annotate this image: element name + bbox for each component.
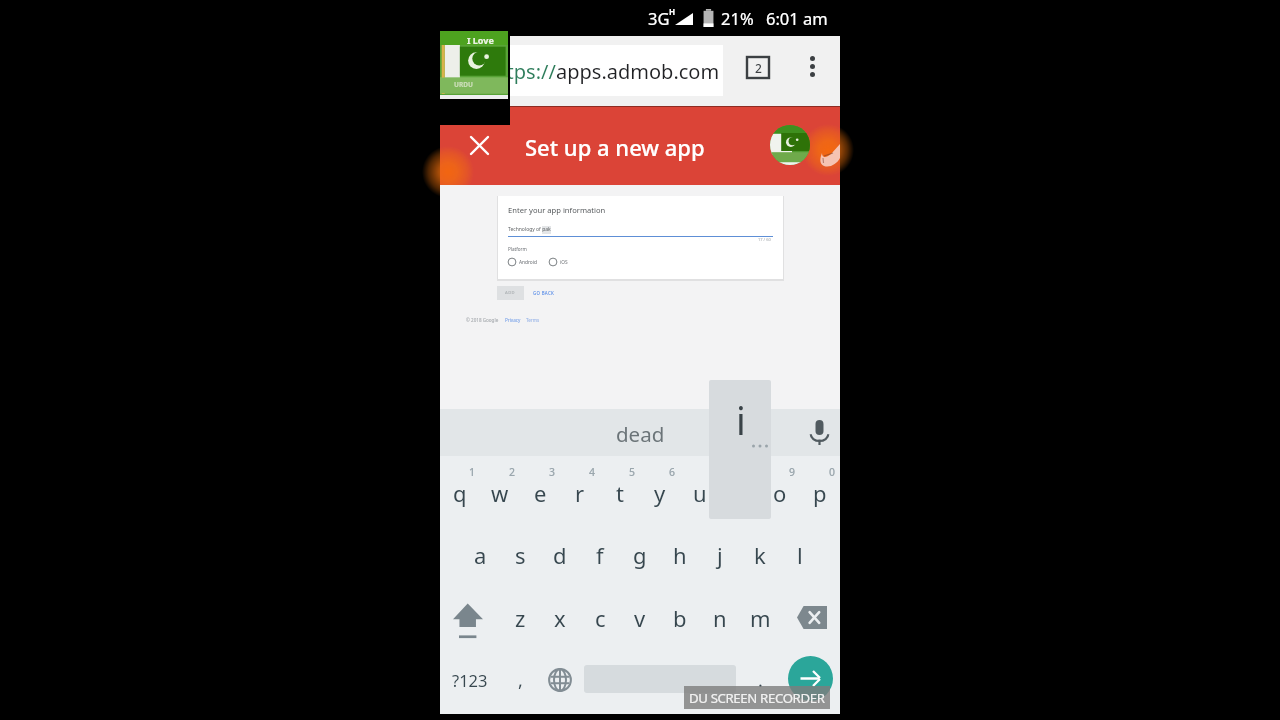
staticText: URDU: [454, 80, 473, 89]
button[interactable]: w: [480, 465, 520, 521]
button[interactable]: Enter: [788, 656, 833, 701]
button[interactable]: Period: [742, 652, 778, 708]
button[interactable]: Change language: [540, 652, 580, 708]
staticText: n: [713, 603, 727, 633]
button[interactable]: Backspace: [789, 589, 835, 645]
button[interactable]: ?123: [442, 652, 498, 708]
button[interactable]: Privacy: [505, 317, 521, 323]
staticText: 3: [549, 465, 589, 479]
staticText: ?123: [452, 669, 488, 691]
button[interactable]: Android: [508, 258, 537, 266]
button[interactable]: j: [700, 527, 740, 583]
button[interactable]: Shift: [441, 593, 494, 649]
button[interactable]: Comma: [502, 652, 538, 708]
button[interactable]: k: [740, 527, 780, 583]
staticText: p: [813, 478, 827, 508]
staticText: v: [634, 603, 646, 633]
staticText: 17 / 60: [758, 237, 771, 242]
button[interactable]: z: [500, 590, 540, 646]
button[interactable]: More options: [798, 52, 826, 80]
staticText: b: [673, 603, 687, 633]
staticText: w: [491, 478, 509, 508]
staticText: u: [693, 478, 707, 508]
staticText: 4: [589, 465, 629, 479]
staticText: f: [596, 540, 604, 570]
staticText: Technology of pak: [508, 226, 551, 233]
button[interactable]: Space: [584, 665, 736, 693]
button[interactable]: q: [440, 465, 480, 521]
button[interactable]: o: [760, 465, 800, 521]
button[interactable]: y: [640, 465, 680, 521]
staticText: s: [515, 540, 526, 570]
staticText: i: [736, 394, 746, 446]
staticText: ,: [518, 668, 523, 693]
button[interactable]: r: [560, 465, 600, 521]
staticText: 21%: [721, 7, 754, 29]
button[interactable]: s: [500, 527, 540, 583]
button[interactable]: x: [540, 590, 580, 646]
button[interactable]: l: [780, 527, 820, 583]
staticText: .: [758, 668, 763, 693]
button[interactable]: Terms: [526, 317, 540, 323]
staticText: I Love: [467, 34, 494, 46]
staticText: apps.admob.com: [556, 58, 720, 85]
button[interactable]: v: [620, 590, 660, 646]
staticText: https://: [487, 58, 556, 85]
staticText: Android: [519, 259, 537, 266]
staticText: g: [633, 540, 647, 570]
button[interactable]: e: [520, 465, 560, 521]
staticText: o: [773, 478, 787, 508]
staticText: x: [554, 603, 566, 633]
staticText: 1: [469, 465, 509, 479]
button[interactable]: Voice input: [804, 417, 834, 447]
staticText: Enter your app information: [508, 205, 606, 215]
staticText: GO BACK: [533, 290, 555, 296]
button[interactable]: u: [680, 465, 720, 521]
staticText: e: [534, 478, 547, 508]
button[interactable]: f: [580, 527, 620, 583]
staticText: Platform: [508, 246, 527, 252]
button[interactable]: Account: [770, 125, 810, 165]
button[interactable]: Close: [465, 131, 493, 159]
staticText: dead: [616, 420, 665, 448]
button[interactable]: n: [700, 590, 740, 646]
staticText: l: [797, 540, 803, 570]
staticText: c: [595, 603, 606, 633]
staticText: q: [453, 478, 467, 508]
staticText: 3G: [648, 7, 670, 29]
staticText: 6: [669, 465, 709, 479]
button[interactable]: p: [800, 465, 840, 521]
button[interactable]: g: [620, 527, 660, 583]
staticText: iOS: [560, 259, 568, 266]
staticText: Set up a new app: [525, 132, 705, 162]
button[interactable]: Tabs: [747, 57, 769, 78]
staticText: 0: [829, 465, 869, 479]
staticText: 8: [749, 465, 789, 479]
staticText: t: [616, 478, 624, 508]
button[interactable]: d: [540, 527, 580, 583]
button[interactable]: a: [460, 527, 500, 583]
staticText: 6:01 am: [766, 7, 828, 29]
staticText: DU SCREEN RECORDER: [689, 689, 825, 707]
button[interactable]: t: [600, 465, 640, 521]
staticText: y: [654, 478, 666, 508]
staticText: d: [553, 540, 567, 570]
staticText: © 2018 Google: [466, 317, 499, 323]
staticText: a: [474, 540, 487, 570]
button[interactable]: h: [660, 527, 700, 583]
staticText: 5: [629, 465, 669, 479]
button[interactable]: ADD: [497, 286, 524, 300]
staticText: 9: [789, 465, 829, 479]
button[interactable]: b: [660, 590, 700, 646]
button[interactable]: https://: [450, 45, 723, 96]
staticText: 2: [755, 60, 762, 76]
button[interactable]: m: [740, 590, 780, 646]
button[interactable]: iOS: [549, 258, 568, 266]
staticText: h: [673, 540, 687, 570]
button[interactable]: GO BACK: [528, 286, 560, 300]
button[interactable]: i: [720, 465, 760, 521]
button[interactable]: c: [580, 590, 620, 646]
staticText: j: [717, 540, 723, 570]
